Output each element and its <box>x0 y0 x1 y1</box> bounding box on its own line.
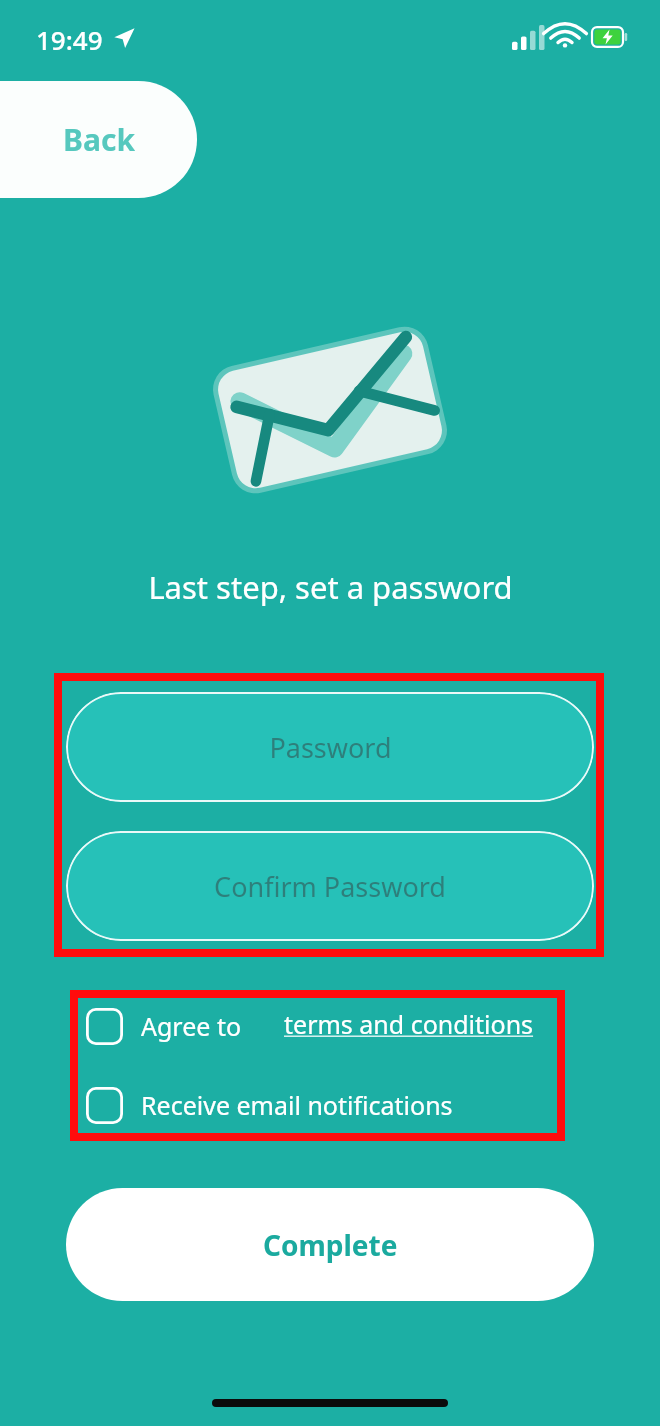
staticText: Last step, set a password <box>148 566 513 608</box>
button[interactable]: Confirm Password <box>66 831 594 941</box>
button[interactable]: terms and conditions <box>282 1007 536 1041</box>
staticText: Password <box>269 729 392 766</box>
button[interactable]: Checkbox, unchecked <box>86 1079 453 1131</box>
staticText: Back <box>63 119 135 160</box>
staticText: Agree to <box>141 1009 242 1043</box>
staticText: Confirm Password <box>214 868 446 905</box>
button[interactable]: Back <box>0 81 197 198</box>
button[interactable]: Password <box>66 692 594 802</box>
staticText: Receive email notifications <box>141 1088 453 1122</box>
staticText: terms and conditions <box>284 1007 534 1041</box>
other: Checkbox, unchecked <box>86 1087 123 1124</box>
staticText: 19:49 <box>36 22 103 57</box>
button[interactable]: Complete <box>66 1188 594 1301</box>
staticText: Complete <box>263 1226 398 1264</box>
button[interactable]: Checkbox, unchecked <box>86 1000 242 1052</box>
other: Checkbox, unchecked <box>86 1008 123 1045</box>
